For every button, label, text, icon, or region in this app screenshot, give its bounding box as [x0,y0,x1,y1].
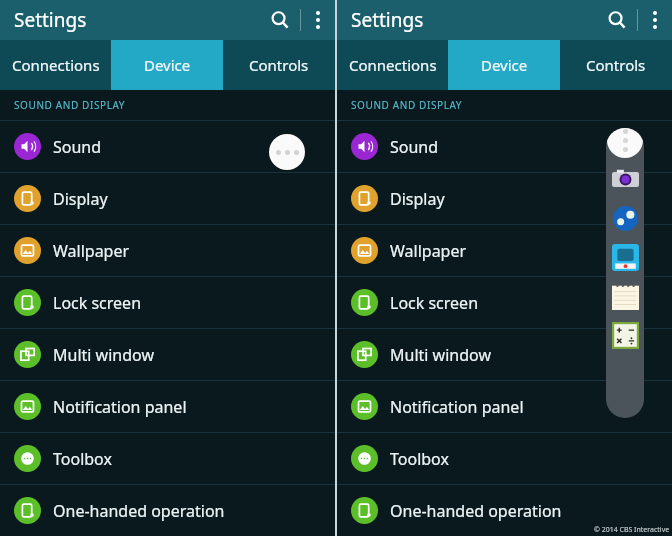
button[interactable]: One-handed operation [337,485,672,536]
button[interactable]: Notification panel [337,381,672,432]
staticText: Multi window [53,344,154,366]
staticText: Connections [12,55,100,75]
staticText: One-handed operation [53,500,225,522]
button[interactable]: Calculator [612,322,639,349]
button[interactable]: Connections [337,40,448,90]
button[interactable]: Controls [560,40,672,90]
button[interactable]: Display [0,173,335,224]
staticText: SOUND AND DISPLAY [351,98,463,112]
button[interactable]: Camera [612,166,639,193]
staticText: Notification panel [53,396,187,418]
button[interactable]: Toolbox [0,433,335,484]
staticText: Multi window [390,344,491,366]
staticText: Controls [586,55,646,75]
button[interactable]: Connections [0,40,111,90]
button[interactable]: Toolbox floating button [269,134,305,170]
button[interactable]: Multi window [337,329,672,380]
staticText: Connections [349,55,437,75]
button[interactable]: Wallpaper [0,225,335,276]
button[interactable]: Search [260,0,300,40]
staticText: Device [144,55,191,75]
staticText: Display [390,188,445,210]
staticText: Toolbox [53,448,112,470]
staticText: Wallpaper [390,240,467,262]
button[interactable]: Voice recorder [612,244,639,271]
staticText: Sound [53,136,102,158]
staticText: © 2014 CBS Interactive [594,525,670,535]
button[interactable]: Device [448,40,560,90]
button[interactable]: Multi window [0,329,335,380]
button[interactable]: Notification panel [0,381,335,432]
staticText: Controls [249,55,309,75]
button[interactable]: Sound [0,121,335,172]
button[interactable]: Search [597,0,637,40]
button[interactable]: Toolbox [337,433,672,484]
staticText: Notification panel [390,396,524,418]
button[interactable]: Display [337,173,672,224]
staticText: One-handed operation [390,500,562,522]
staticText: Lock screen [53,292,142,314]
staticText: Settings [351,7,424,33]
button[interactable]: Sound [337,121,672,172]
staticText: SOUND AND DISPLAY [14,98,126,112]
button[interactable]: Toolbox [607,128,643,158]
button[interactable]: Controls [223,40,335,90]
staticText: Toolbox [390,448,449,470]
button[interactable]: Lock screen [337,277,672,328]
staticText: Settings [14,7,87,33]
button[interactable]: Device [111,40,223,90]
button[interactable]: Browser [612,205,639,232]
staticText: Wallpaper [53,240,130,262]
button[interactable]: One-handed operation [0,485,335,536]
button[interactable]: Wallpaper [337,225,672,276]
staticText: Display [53,188,108,210]
staticText: Device [481,55,528,75]
button[interactable]: More options [301,3,335,37]
staticText: Sound [390,136,439,158]
button[interactable]: More options [638,3,672,37]
staticText: Lock screen [390,292,479,314]
button[interactable]: Lock screen [0,277,335,328]
button[interactable]: Memo [612,283,639,310]
